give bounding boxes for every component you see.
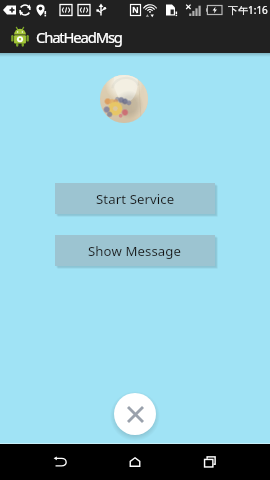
button[interactable]: Home [105, 444, 165, 480]
staticText: Start Service [96, 190, 175, 208]
staticText: ChatHeadMsg [36, 27, 122, 47]
button[interactable]: Start Service [55, 183, 215, 214]
button[interactable]: Show Message [55, 235, 215, 266]
staticText: 下午1:16 [228, 3, 268, 17]
button[interactable]: Close [114, 393, 156, 435]
staticText: Show Message [88, 242, 182, 260]
button[interactable]: Recent apps [180, 444, 240, 480]
button[interactable]: Profile photo [100, 75, 148, 123]
button[interactable]: Back [30, 444, 90, 480]
